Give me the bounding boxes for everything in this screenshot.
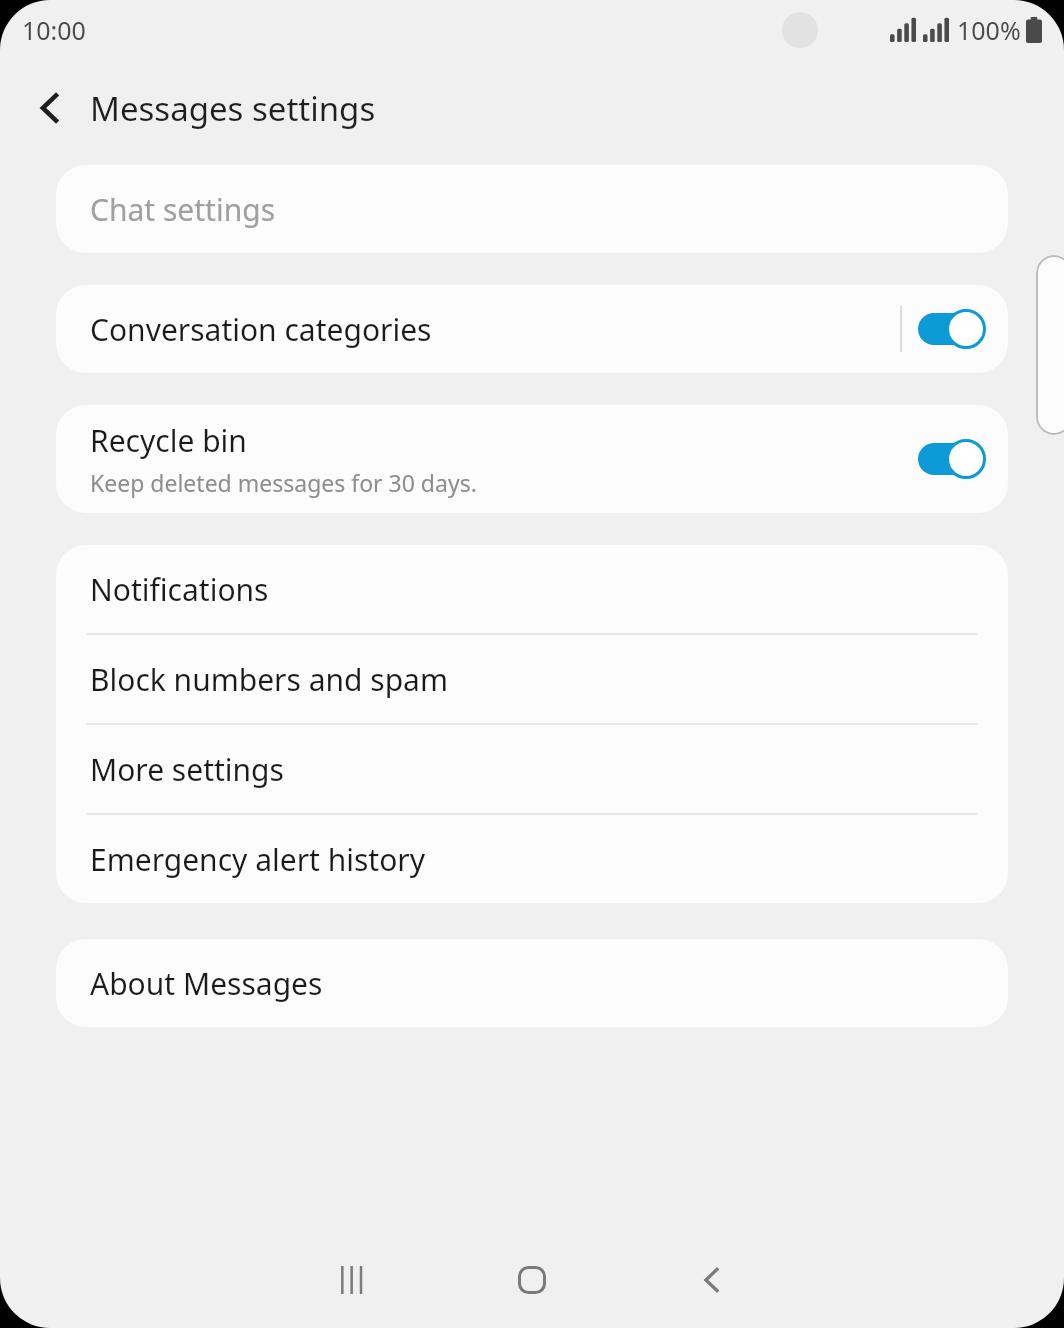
button[interactable]: Conversation categories bbox=[56, 285, 1008, 373]
button[interactable]: More settings bbox=[56, 725, 1008, 813]
staticText: Recycle bin bbox=[90, 420, 247, 461]
staticText: 10:00 bbox=[22, 13, 86, 47]
button[interactable]: Back bbox=[652, 1232, 772, 1328]
staticText: Chat settings bbox=[90, 189, 276, 230]
staticText: Conversation categories bbox=[90, 309, 900, 350]
staticText: Keep deleted messages for 30 days. bbox=[90, 467, 477, 498]
button[interactable]: Emergency alert history bbox=[56, 815, 1008, 903]
staticText: Notifications bbox=[90, 569, 269, 610]
button[interactable]: Block numbers and spam bbox=[56, 635, 1008, 723]
button[interactable]: About Messages bbox=[56, 939, 1008, 1027]
button[interactable]: Toggle, on bbox=[918, 439, 986, 479]
button[interactable]: Toggle, on bbox=[918, 309, 986, 349]
button[interactable]: Notifications bbox=[56, 545, 1008, 633]
button[interactable]: Home bbox=[472, 1232, 592, 1328]
button[interactable]: Recent apps bbox=[292, 1232, 412, 1328]
staticText: Messages settings bbox=[90, 86, 376, 131]
staticText: About Messages bbox=[90, 963, 323, 1004]
button[interactable]: Recycle bin bbox=[56, 405, 1008, 513]
staticText: More settings bbox=[90, 749, 284, 790]
staticText: 100% bbox=[957, 13, 1021, 47]
staticText: Block numbers and spam bbox=[90, 659, 448, 700]
staticText: Emergency alert history bbox=[90, 839, 425, 880]
button[interactable]: Back bbox=[24, 82, 76, 134]
button[interactable]: Chat settings bbox=[56, 165, 1008, 253]
